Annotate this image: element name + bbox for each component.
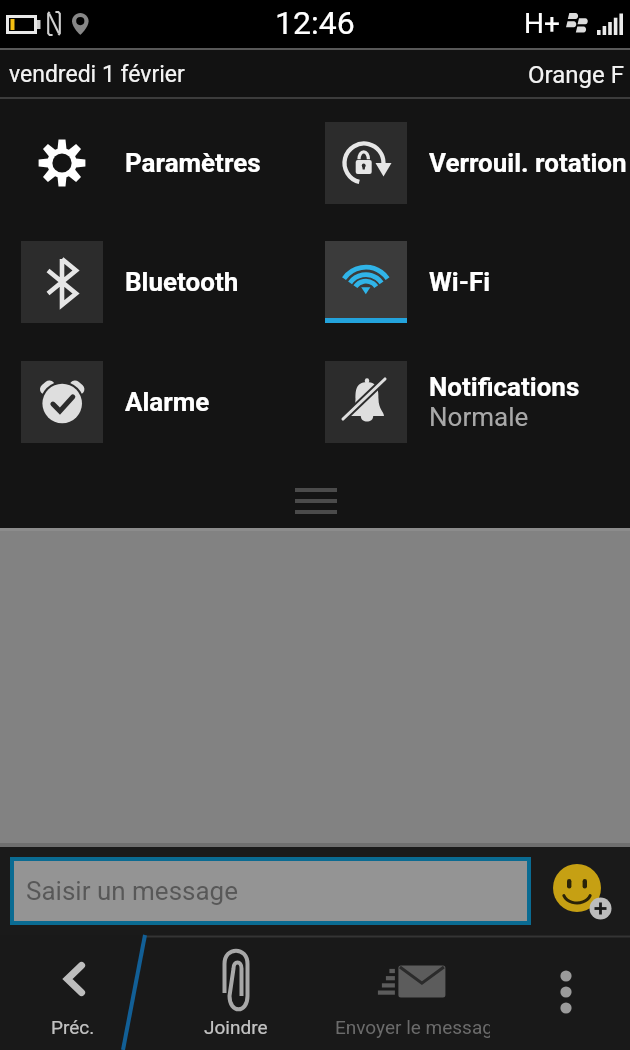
staticText: 12:46 (275, 4, 355, 42)
button[interactable]: Verrouil. rotation (304, 122, 630, 204)
staticText: Paramètres (125, 148, 261, 178)
staticText: Bluetooth (125, 267, 239, 297)
button[interactable]: Insert emoticon (545, 855, 617, 927)
button[interactable]: Notifications (304, 361, 630, 443)
staticText: Joindre (204, 1016, 268, 1038)
staticText: Wi-Fi (429, 267, 491, 297)
staticText: Saisir un message (26, 876, 238, 906)
button[interactable]: Bluetooth (0, 241, 304, 323)
staticText: Préc. (51, 1016, 95, 1038)
staticText: H+ (524, 7, 560, 40)
staticText: Orange F (528, 61, 624, 89)
button[interactable]: More options (516, 935, 630, 1050)
button[interactable]: Envoyer le message (327, 935, 516, 1050)
staticText: vendredi 1 février (9, 61, 185, 88)
staticText: Verrouil. rotation (429, 148, 627, 178)
staticText: Alarme (125, 387, 210, 417)
staticText: Normale (429, 402, 529, 432)
button[interactable]: Joindre (145, 935, 327, 1050)
staticText: Notifications (429, 372, 580, 402)
button[interactable]: Wi-Fi (304, 241, 630, 323)
button[interactable]: Paramètres (0, 122, 304, 204)
staticText: Envoyer le message (335, 1016, 490, 1038)
button[interactable]: Alarme (0, 361, 304, 443)
button[interactable]: Préc. (0, 935, 145, 1050)
button[interactable]: Saisir un message (14, 861, 527, 921)
